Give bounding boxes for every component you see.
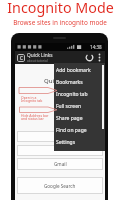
- button[interactable]: Settings: [54, 136, 105, 148]
- button[interactable]: Bookmarks: [54, 76, 105, 88]
- button[interactable]: Gmail: [17, 158, 103, 170]
- staticText: Quick Links: [27, 52, 53, 59]
- staticText: Share page: [56, 115, 83, 122]
- staticText: C: [20, 55, 23, 61]
- button[interactable]: Find on page: [54, 124, 105, 136]
- staticText: Quick Links: [44, 77, 77, 85]
- staticText: Open in a Incognito tab: [21, 95, 43, 103]
- staticText: about:tutorial: [27, 59, 48, 63]
- staticText: Add bookmark: [56, 67, 91, 74]
- button[interactable]: Add bookmark: [54, 64, 105, 76]
- button[interactable]: Incognito tab: [54, 88, 105, 100]
- staticText: Bookmarks: [56, 79, 83, 86]
- button[interactable]: [17, 131, 103, 142]
- staticText: Settings: [56, 139, 76, 146]
- button[interactable]: [17, 145, 103, 156]
- staticText: 14:38: [90, 44, 102, 50]
- staticText: Find on page: [56, 127, 87, 134]
- staticText: Browse sites in incognito mode: [13, 18, 107, 27]
- button[interactable]: More options: [95, 53, 104, 62]
- button[interactable]: Share page: [54, 112, 105, 124]
- button[interactable]: Reload: [84, 52, 95, 63]
- staticText: Incognito Mode: [7, 0, 114, 17]
- button[interactable]: Full screen: [54, 100, 105, 112]
- staticText: Full screen: [56, 103, 82, 110]
- staticText: Hide Address bar and status bar: [21, 113, 49, 121]
- button[interactable]: C: [15, 51, 105, 64]
- staticText: Google Search: [44, 183, 76, 189]
- staticText: Gmail: [54, 161, 67, 167]
- staticText: Incognito tab: [56, 91, 88, 98]
- button[interactable]: Google Search: [17, 177, 103, 194]
